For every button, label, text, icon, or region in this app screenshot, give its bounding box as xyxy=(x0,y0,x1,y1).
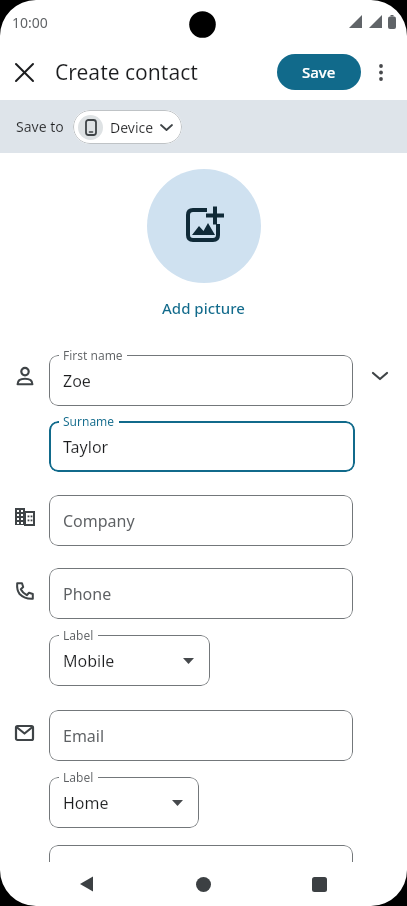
staticText: Home xyxy=(63,792,109,814)
staticText: Add picture xyxy=(162,298,245,318)
button[interactable] xyxy=(49,635,210,686)
staticText: Device xyxy=(110,118,154,137)
button[interactable]: Add picture xyxy=(0,298,407,318)
staticText: Email xyxy=(63,725,105,747)
button[interactable] xyxy=(49,710,353,761)
button[interactable] xyxy=(49,355,353,406)
staticText: Taylor xyxy=(63,436,109,458)
staticText: Save xyxy=(302,62,336,82)
staticText: Company xyxy=(63,510,135,532)
staticText: Phone xyxy=(63,583,112,605)
staticText: 10:00 xyxy=(12,13,48,32)
button[interactable] xyxy=(49,421,355,472)
button[interactable] xyxy=(16,54,52,90)
button[interactable] xyxy=(196,877,211,892)
button[interactable] xyxy=(49,777,199,828)
button[interactable] xyxy=(369,60,393,84)
button[interactable]: Device xyxy=(73,110,182,144)
staticText: Save to xyxy=(16,117,64,136)
staticText: Zoe xyxy=(63,370,91,392)
staticText: Mobile xyxy=(63,650,115,672)
staticText: Label xyxy=(63,627,94,643)
staticText: Label xyxy=(63,769,94,785)
button[interactable] xyxy=(147,169,261,283)
staticText: Surname xyxy=(63,413,115,429)
button[interactable] xyxy=(49,568,353,619)
button[interactable] xyxy=(79,876,93,892)
button[interactable]: Save xyxy=(277,54,361,90)
button[interactable] xyxy=(312,877,327,892)
staticText: First name xyxy=(63,347,123,363)
staticText: Create contact xyxy=(55,58,198,87)
button[interactable] xyxy=(49,845,353,862)
button[interactable] xyxy=(49,495,353,546)
button[interactable] xyxy=(353,350,407,401)
